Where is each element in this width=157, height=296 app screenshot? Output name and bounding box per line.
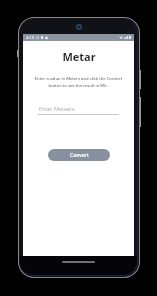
staticText: 2:13 <box>26 35 34 40</box>
staticText: Convert <box>70 152 89 159</box>
staticText: Enter a value in Meters and click the Co… <box>29 76 128 88</box>
staticText: Metar <box>62 49 96 64</box>
button[interactable]: Convert <box>48 149 110 161</box>
staticText: Enter Metaers <box>39 105 75 112</box>
button[interactable]: Enter Metaers <box>38 105 119 115</box>
